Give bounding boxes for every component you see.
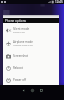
button[interactable]: Reboot xyxy=(3,62,59,74)
button[interactable]: Power off xyxy=(3,74,59,86)
button[interactable]: Back xyxy=(19,86,28,94)
staticText: Reboot xyxy=(13,66,23,70)
button[interactable]: Screenshot xyxy=(3,50,59,62)
button[interactable]: Recent apps xyxy=(37,86,46,94)
staticText: Silent mode xyxy=(13,27,30,31)
button[interactable]: Home xyxy=(28,86,37,94)
staticText: Screenshot xyxy=(13,54,29,58)
staticText: Phone options xyxy=(5,19,27,23)
staticText: Airplane mode xyxy=(13,40,33,44)
staticText: Sound is off xyxy=(13,31,25,34)
staticText: 12:45 xyxy=(55,0,63,4)
button[interactable]: Airplane mode xyxy=(3,37,59,50)
staticText: Power off xyxy=(13,78,27,82)
button[interactable]: Silent mode xyxy=(3,23,59,37)
staticText: Airplane mode is off xyxy=(13,44,33,47)
